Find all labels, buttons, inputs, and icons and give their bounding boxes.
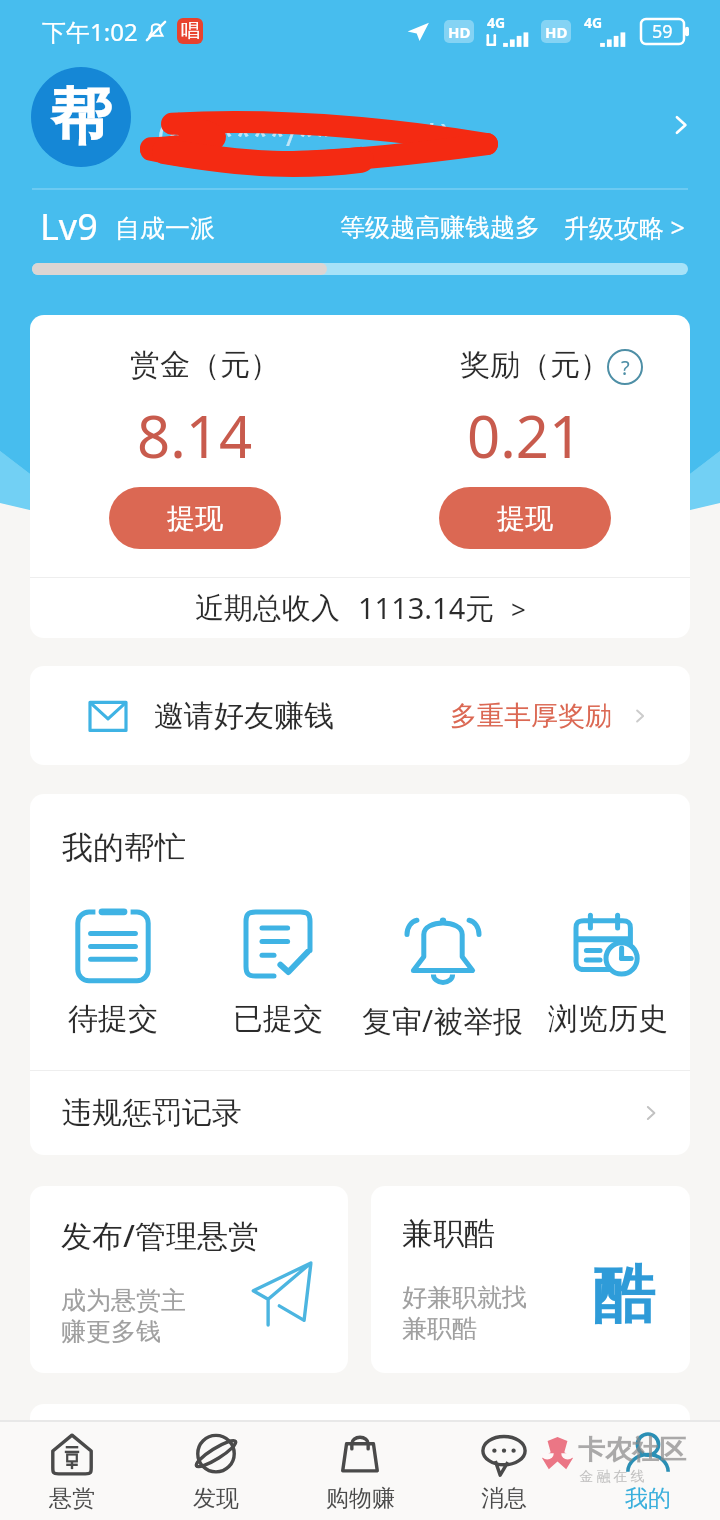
staticText: 近期总收入 bbox=[195, 590, 340, 627]
button[interactable]: 发现 bbox=[144, 1422, 288, 1513]
button[interactable]: 兼职酷 bbox=[371, 1186, 690, 1373]
staticText: 好兼职就找 bbox=[402, 1282, 527, 1313]
staticText: 4G bbox=[584, 13, 603, 32]
staticText: 发布/管理悬赏 bbox=[61, 1214, 259, 1256]
button[interactable]: 待提交 bbox=[30, 904, 195, 1038]
button[interactable]: 消息 bbox=[432, 1422, 576, 1513]
button[interactable]: 帮助 bbox=[607, 349, 643, 385]
staticText: HD bbox=[545, 22, 568, 42]
staticText: 提现 bbox=[497, 501, 553, 536]
staticText: 酷 bbox=[593, 1256, 655, 1334]
staticText: 成为悬赏主 bbox=[61, 1285, 186, 1316]
staticText: 等级越高赚钱越多 bbox=[340, 212, 540, 243]
staticText: 发现 bbox=[193, 1484, 239, 1513]
staticText: > bbox=[511, 591, 526, 626]
staticText: 卡农社区 bbox=[578, 1433, 686, 1467]
staticText: 升级攻略 > bbox=[564, 210, 685, 244]
staticText: 唱 bbox=[181, 19, 200, 43]
button[interactable]: 购物赚 bbox=[288, 1422, 432, 1513]
staticText: 兼职酷 bbox=[402, 1313, 477, 1344]
button[interactable]: 近期总收入 bbox=[30, 578, 690, 638]
button[interactable]: 我的 bbox=[576, 1422, 720, 1513]
staticText: 奖励（元） bbox=[460, 346, 610, 384]
staticText: 1113.14元 bbox=[358, 588, 495, 628]
staticText: 复审/被举报 bbox=[362, 1000, 524, 1041]
staticText: 下午1:02 bbox=[42, 15, 138, 48]
staticText: 浏览历史 bbox=[548, 1000, 668, 1038]
other: 个人资料 bbox=[664, 108, 698, 142]
staticText: 待提交 bbox=[68, 1000, 158, 1038]
staticText: 已提交 bbox=[233, 1000, 323, 1038]
staticText: 59 bbox=[652, 19, 673, 44]
staticText: 我的 bbox=[625, 1484, 671, 1513]
button[interactable]: 帮 bbox=[0, 62, 720, 188]
staticText: 违规惩罚记录 bbox=[62, 1094, 242, 1132]
staticText: ? bbox=[621, 354, 630, 381]
button[interactable]: 提现 bbox=[439, 487, 611, 549]
staticText: 金融在线 bbox=[578, 1468, 646, 1486]
staticText: 赏金（元） bbox=[130, 346, 280, 384]
button[interactable]: 违规惩罚记录 bbox=[30, 1071, 690, 1155]
button[interactable]: 邀请好友赚钱 bbox=[30, 666, 690, 765]
staticText: HD bbox=[448, 22, 471, 42]
button[interactable]: 复审/被举报 bbox=[360, 904, 525, 1041]
staticText: 0.21 bbox=[467, 396, 583, 475]
staticText: 帮 bbox=[50, 78, 112, 156]
button[interactable]: 已提交 bbox=[195, 904, 360, 1038]
staticText: 提现 bbox=[167, 501, 223, 536]
staticText: Lv9 bbox=[40, 202, 98, 251]
staticText: 购物赚 bbox=[326, 1484, 395, 1513]
staticText: 兼职酷 bbox=[402, 1214, 495, 1253]
staticText: 邀请好友赚钱 bbox=[154, 697, 334, 735]
staticText: (** ****/** ****) bbox=[158, 113, 450, 155]
staticText: 我的帮忙 bbox=[62, 828, 186, 867]
staticText: 4G bbox=[487, 13, 506, 32]
button[interactable]: 等级越高赚钱越多 bbox=[340, 210, 685, 244]
button[interactable]: 悬赏 bbox=[0, 1422, 144, 1513]
button[interactable]: 发布/管理悬赏 bbox=[30, 1186, 348, 1373]
button[interactable]: 提现 bbox=[109, 487, 281, 549]
staticText: 消息 bbox=[481, 1484, 527, 1513]
staticText: 赚更多钱 bbox=[61, 1316, 161, 1347]
staticText: 悬赏 bbox=[49, 1484, 95, 1513]
staticText: 多重丰厚奖励 bbox=[450, 699, 612, 733]
button[interactable]: 浏览历史 bbox=[525, 904, 690, 1038]
staticText: 自成一派 bbox=[115, 213, 215, 244]
staticText: 8.14 bbox=[137, 396, 253, 475]
